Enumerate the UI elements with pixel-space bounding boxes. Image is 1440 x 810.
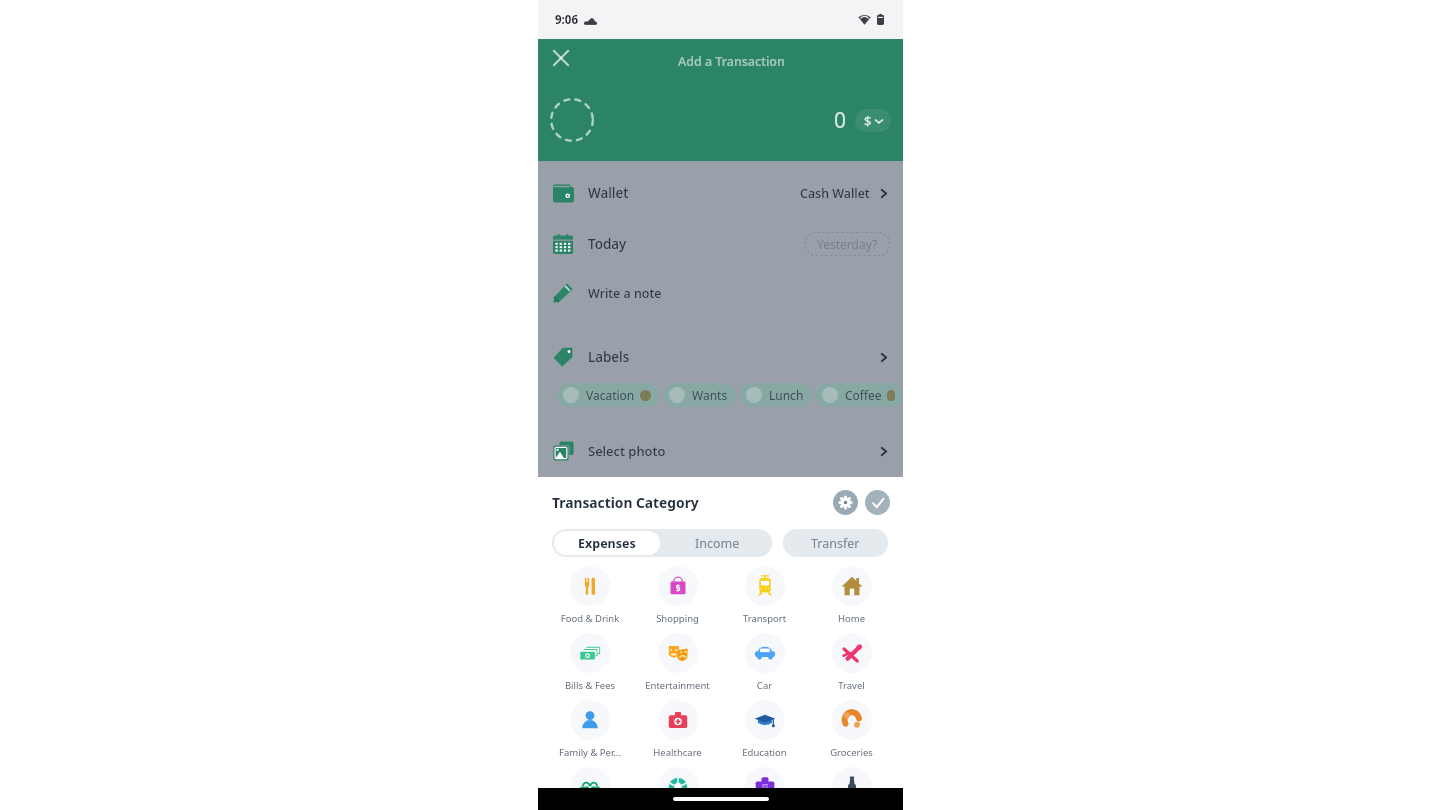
button[interactable]: Expenses [554,531,660,555]
staticText: Transaction Category [552,493,699,512]
button[interactable]: Sports [634,767,721,810]
button[interactable]: Family & Per... [546,700,634,759]
staticText: Entertainment [634,679,721,692]
staticText: Family & Per... [546,746,634,759]
staticText: Add a Transaction [678,53,785,70]
staticText: Travel [808,679,895,692]
button[interactable]: Wants [663,383,736,407]
button[interactable]: Transport [721,566,808,625]
button[interactable]: Travel [808,633,895,692]
staticText: $ [864,112,872,130]
button[interactable]: Select photo [538,438,903,464]
button[interactable]: Car [721,633,808,692]
button[interactable]: Settings [833,490,858,515]
staticText: Cash Wallet [800,185,870,202]
staticText: Labels [588,348,630,366]
staticText: Today [588,235,627,253]
staticText: Vacation [586,387,635,403]
staticText: Healthcare [634,746,721,759]
button[interactable]: Labels [538,344,903,370]
button[interactable]: Transfer [783,529,888,557]
button[interactable]: Close [546,43,576,73]
staticText: Education [721,746,808,759]
staticText: Shopping [634,612,721,625]
staticText: Expenses [578,535,636,552]
button[interactable]: Entertainment [634,633,721,692]
button[interactable]: Vacation [557,383,659,407]
button[interactable]: Gifts [546,767,634,810]
button[interactable]: Groceries [808,700,895,759]
button[interactable]: Confirm [865,490,890,515]
staticText: Select photo [588,442,666,460]
button[interactable]: Healthcare [634,700,721,759]
staticText: Bills & Fees [546,679,634,692]
button[interactable]: Lunch [740,383,812,407]
staticText: Income [695,535,740,552]
staticText: Car [721,679,808,692]
button[interactable]: Income [662,529,772,557]
button[interactable]: Drinks [808,767,895,810]
button[interactable]: Home [808,566,895,625]
button[interactable]: Write a note [538,280,903,306]
staticText: Transport [721,612,808,625]
staticText: Wants [692,387,728,403]
staticText: Groceries [808,746,895,759]
staticText: Coffee [845,387,882,403]
staticText: Food & Drink [546,612,634,625]
staticText: Write a note [588,285,662,302]
button[interactable]: Beauty [721,767,808,810]
staticText: 9:06 [555,12,578,28]
staticText: Transfer [811,535,860,552]
button[interactable]: Food & Drink [546,566,634,625]
staticText: Lunch [769,387,804,403]
button[interactable]: $ [855,109,891,132]
button[interactable]: Bills & Fees [546,633,634,692]
button[interactable]: Education [721,700,808,759]
button[interactable]: Today [538,231,903,257]
staticText: 0 [834,106,847,135]
staticText: Yesterday? [817,236,878,252]
button[interactable]: Yesterday? [805,232,890,256]
button[interactable]: Coffee [816,383,903,407]
button[interactable]: Shopping [634,566,721,625]
button[interactable]: Wallet [538,180,903,206]
staticText: Home [808,612,895,625]
staticText: Wallet [588,184,629,202]
